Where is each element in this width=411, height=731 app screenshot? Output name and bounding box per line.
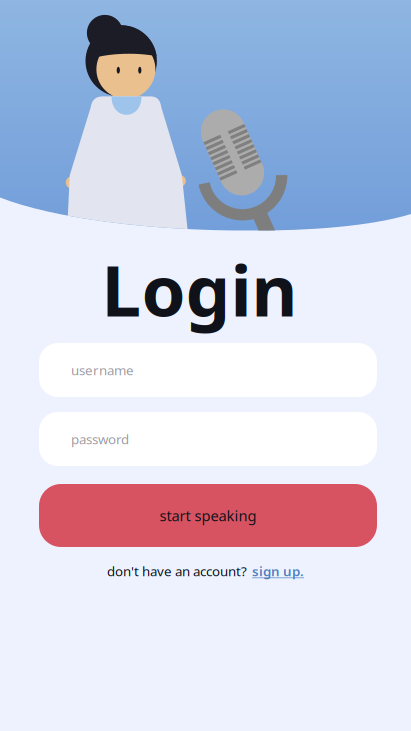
staticText: start speaking <box>159 506 256 525</box>
button[interactable]: start speaking <box>39 484 377 547</box>
staticText: Login <box>101 242 297 336</box>
staticText: sign up. <box>252 562 304 580</box>
button[interactable]: password <box>39 412 377 466</box>
staticText: password <box>71 430 129 448</box>
staticText: don't have an account? <box>107 562 247 580</box>
button[interactable]: username <box>39 343 377 397</box>
staticText: username <box>71 361 134 379</box>
button[interactable]: sign up. <box>252 562 304 580</box>
